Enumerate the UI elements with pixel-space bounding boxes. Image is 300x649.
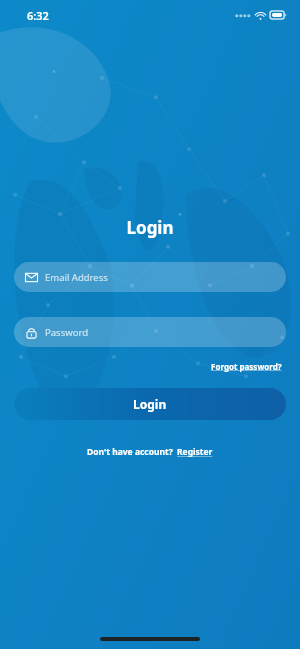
staticText: Forgot password?	[211, 361, 282, 372]
staticText: Login	[133, 396, 167, 412]
button[interactable]: Register	[176, 444, 214, 460]
staticText: Don't have account?	[87, 446, 176, 458]
staticText: 6:32	[27, 8, 49, 23]
staticText: Email Address	[45, 271, 108, 284]
button[interactable]: Password	[14, 317, 286, 347]
staticText: Register	[177, 446, 213, 458]
button[interactable]: Email Address	[14, 262, 286, 292]
staticText: Password	[45, 326, 88, 339]
staticText: Login	[126, 216, 174, 239]
button[interactable]: Forgot password?	[209, 359, 284, 374]
button[interactable]: Login	[14, 388, 286, 420]
